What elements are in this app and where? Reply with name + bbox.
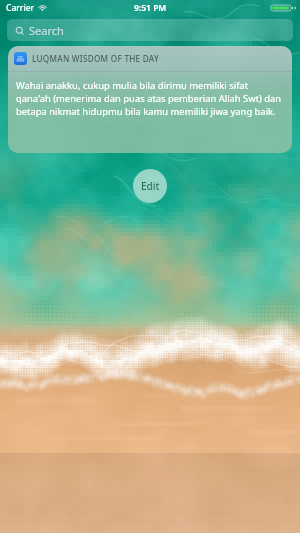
staticText: Search [29, 23, 64, 38]
staticText: LUQMAN WISDOM OF THE DAY [32, 53, 160, 64]
button[interactable]: Edit widgets [133, 169, 167, 203]
button[interactable]: Search [7, 19, 293, 41]
staticText: 9:51 PM [134, 2, 167, 14]
button[interactable]: LUQMAN WISDOM OF THE DAY [8, 46, 292, 153]
staticText: Carrier [6, 2, 35, 14]
staticText: Edit [141, 179, 160, 193]
staticText: Wahai anakku, cukup mulia bila dirimu me… [16, 79, 284, 118]
